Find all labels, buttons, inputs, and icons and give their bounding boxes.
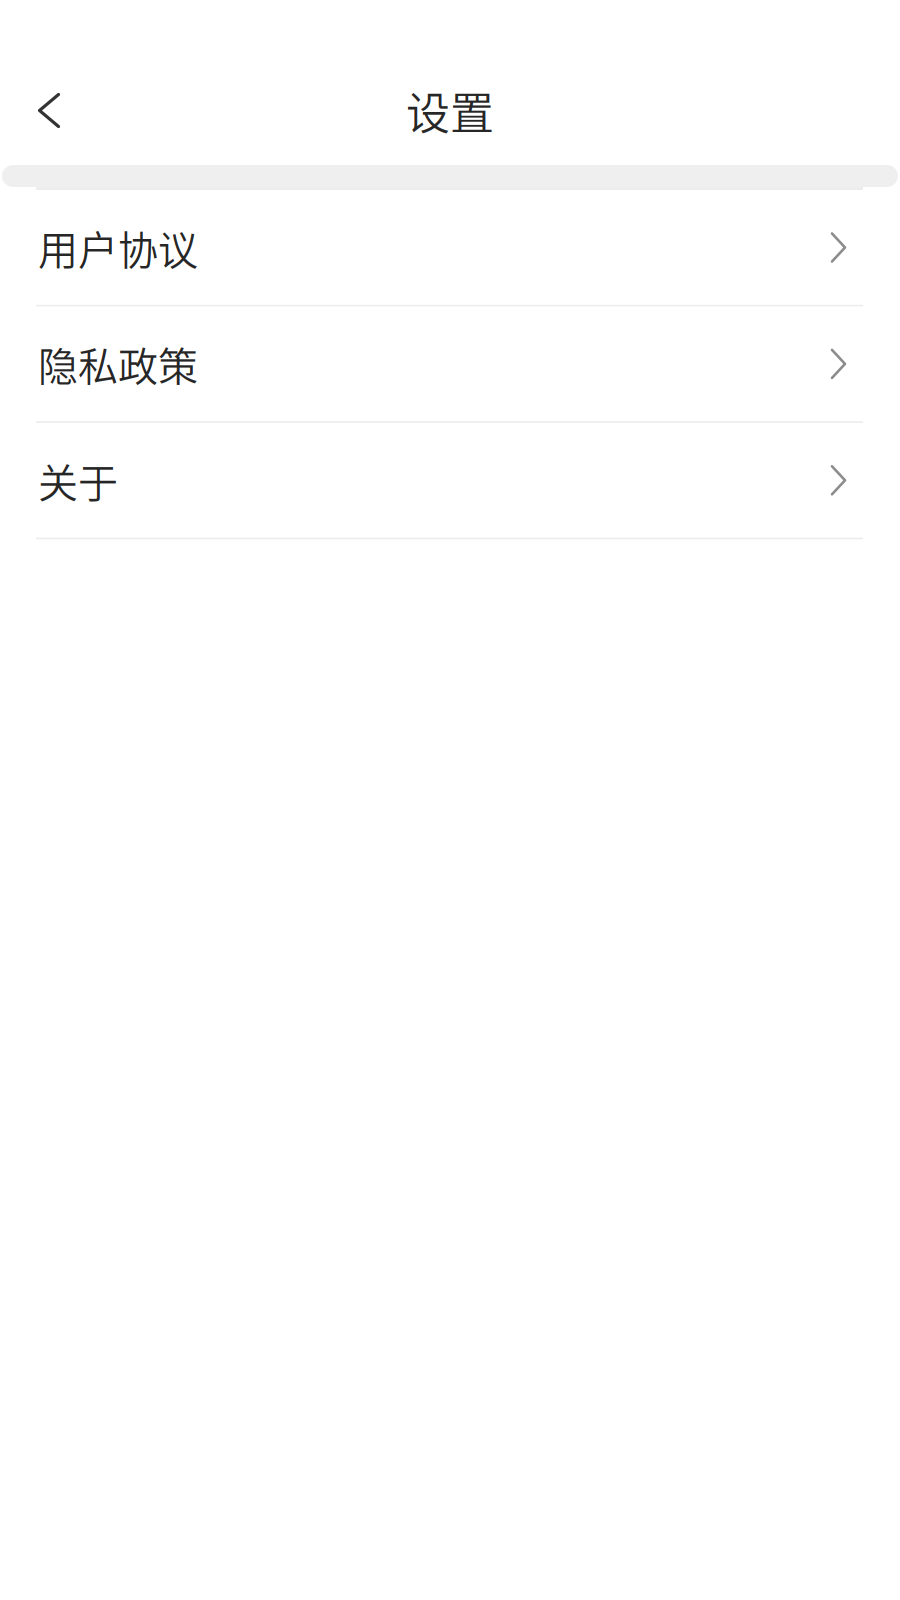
staticText: 关于 <box>38 451 118 509</box>
staticText: 用户协议 <box>38 218 198 276</box>
staticText: 隐私政策 <box>38 335 198 393</box>
button[interactable]: 关于 <box>0 423 900 538</box>
button[interactable]: 隐私政策 <box>0 307 900 421</box>
button[interactable]: Back <box>0 72 86 148</box>
button[interactable]: 用户协议 <box>0 190 900 305</box>
staticText: 设置 <box>406 79 494 142</box>
